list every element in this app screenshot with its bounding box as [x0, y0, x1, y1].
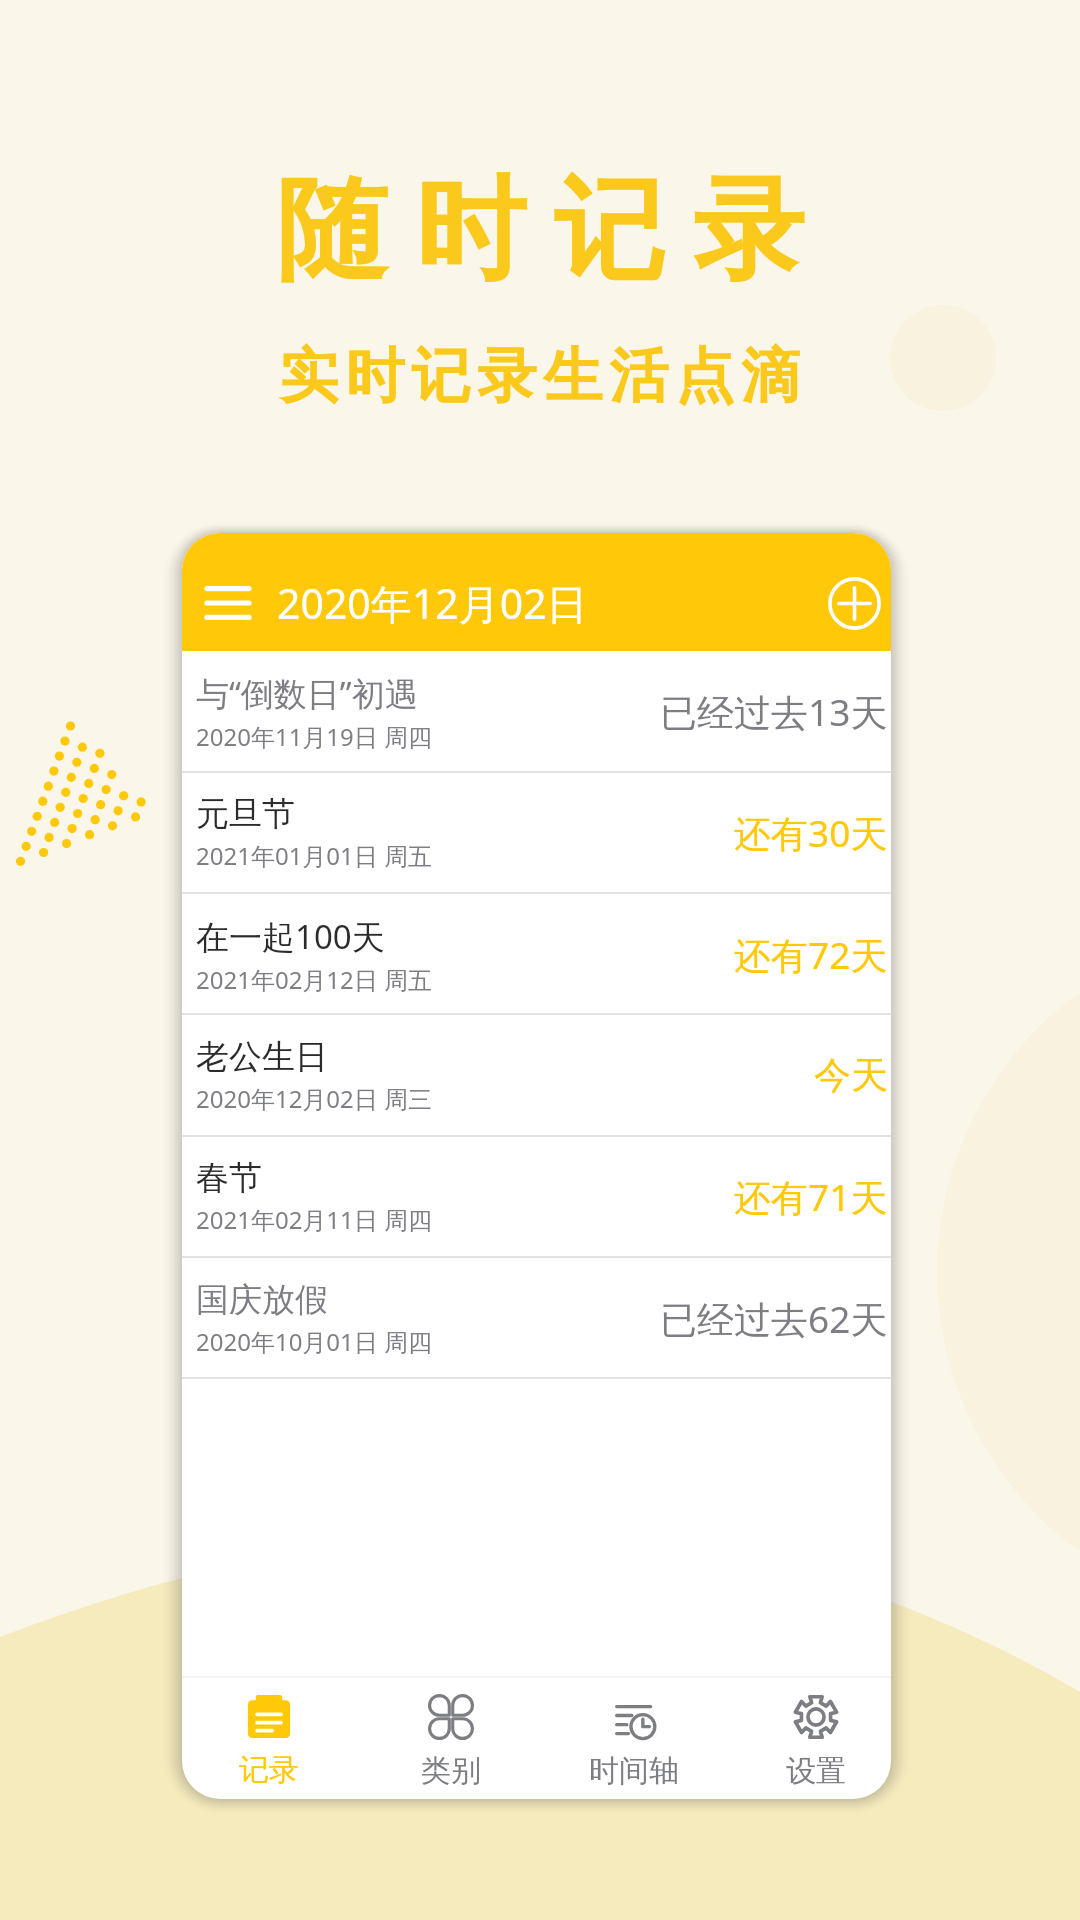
- button[interactable]: 春节: [182, 1136, 891, 1257]
- staticText: 记录: [239, 1751, 299, 1789]
- staticText: 国庆放假: [196, 1279, 328, 1321]
- button[interactable]: 记录: [194, 1678, 344, 1799]
- button[interactable]: 元旦节: [182, 772, 891, 893]
- staticText: 今天: [814, 1052, 888, 1099]
- staticText: 类别: [421, 1752, 481, 1790]
- button[interactable]: 类别: [376, 1678, 526, 1799]
- button[interactable]: Add: [823, 572, 886, 635]
- button[interactable]: 老公生日: [182, 1015, 891, 1136]
- staticText: 2020年12月02日: [277, 575, 588, 631]
- staticText: 已经过去13天: [660, 686, 888, 737]
- staticText: 2020年10月01日 周四: [196, 1325, 433, 1358]
- staticText: 还有72天: [734, 929, 888, 980]
- staticText: 在一起100天: [196, 914, 385, 959]
- staticText: 2020年12月02日 周三: [196, 1082, 433, 1115]
- staticText: 与“倒数日”初遇: [196, 671, 418, 716]
- button[interactable]: 设置: [741, 1678, 891, 1799]
- button[interactable]: 时间轴: [559, 1678, 709, 1799]
- staticText: 2021年02月11日 周四: [196, 1203, 433, 1236]
- staticText: 还有30天: [734, 807, 888, 858]
- staticText: 设置: [786, 1752, 846, 1790]
- button[interactable]: 国庆放假: [182, 1258, 891, 1379]
- staticText: 还有71天: [734, 1171, 888, 1222]
- staticText: 随时记录: [262, 161, 818, 301]
- button[interactable]: 与“倒数日”初遇: [182, 651, 891, 772]
- staticText: 2020年11月19日 周四: [196, 720, 433, 753]
- staticText: 春节: [196, 1157, 262, 1199]
- button[interactable]: 在一起100天: [182, 894, 891, 1015]
- staticText: 2021年01月01日 周五: [196, 839, 433, 872]
- staticText: 2021年02月12日 周五: [196, 963, 433, 996]
- staticText: 已经过去62天: [660, 1293, 888, 1344]
- staticText: 老公生日: [196, 1036, 328, 1078]
- button[interactable]: Menu: [195, 570, 261, 636]
- staticText: 实时记录生活点滴: [276, 339, 804, 413]
- staticText: 时间轴: [589, 1752, 679, 1790]
- staticText: 元旦节: [196, 793, 295, 835]
